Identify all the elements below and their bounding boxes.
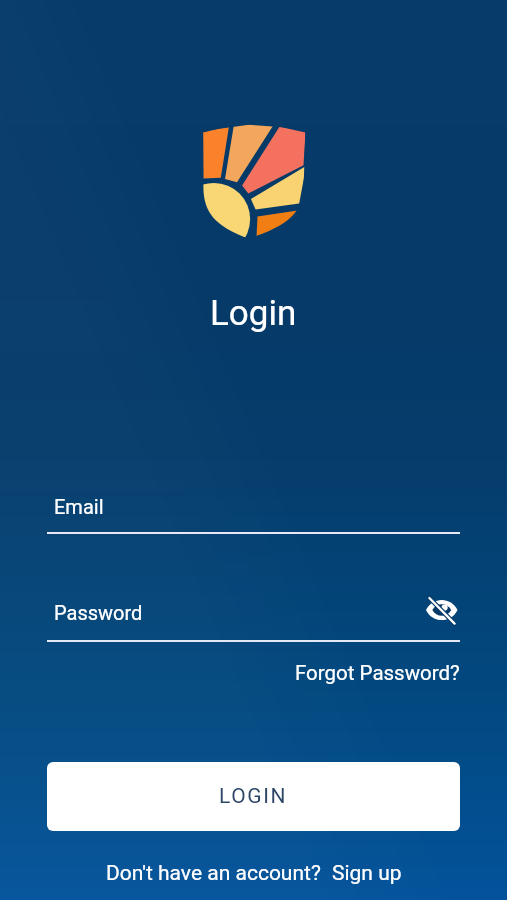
button[interactable]: LOGIN xyxy=(47,762,460,831)
button[interactable]: Forgot Password? xyxy=(295,661,460,685)
staticText: Don't have an account? xyxy=(106,861,321,886)
button[interactable]: Password xyxy=(47,601,460,642)
button[interactable]: Email xyxy=(47,495,460,534)
staticText: Forgot Password? xyxy=(295,661,460,685)
button[interactable]: Toggle password visibility xyxy=(424,595,460,625)
staticText: Email xyxy=(54,495,104,518)
staticText: LOGIN xyxy=(219,784,288,809)
button[interactable]: Sign up xyxy=(332,861,402,886)
staticText: Password xyxy=(54,601,143,624)
staticText: Login xyxy=(210,293,297,334)
staticText: Sign up xyxy=(332,861,402,886)
